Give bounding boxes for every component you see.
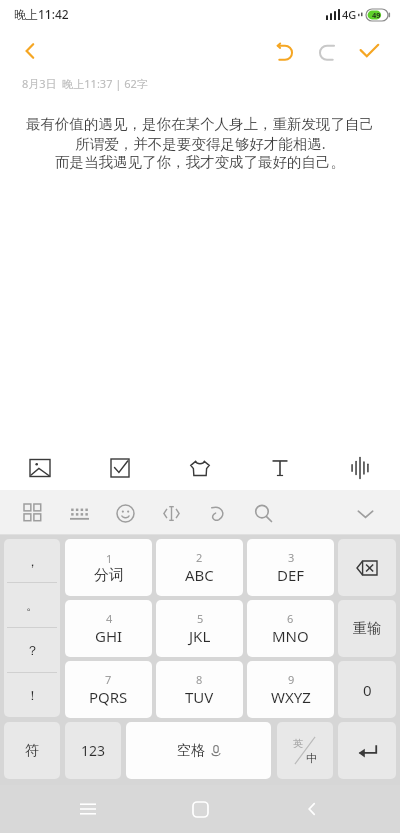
staticText: 6 — [287, 611, 294, 626]
button[interactable]: Enter — [338, 722, 396, 779]
staticText: PQRS — [89, 687, 128, 707]
button[interactable]: 2 — [156, 539, 243, 596]
staticText: MNO — [272, 626, 309, 646]
staticText: TUV — [185, 687, 214, 707]
button[interactable]: Text format — [240, 445, 320, 490]
staticText: DEF — [277, 565, 305, 585]
button[interactable]: Apps — [12, 492, 54, 534]
staticText: WXYZ — [271, 687, 311, 707]
staticText: 最有价值的遇见，是你在某个人身上，重新发现了自己 — [26, 115, 374, 133]
button[interactable]: ， — [4, 539, 60, 582]
button[interactable]: 符 — [4, 722, 60, 779]
staticText: 符 — [25, 742, 39, 760]
staticText: 空格 — [177, 742, 205, 760]
button[interactable]: 重输 — [338, 600, 396, 657]
staticText: JKL — [189, 626, 211, 646]
staticText: 8月3日 晚上11:37 | 62字 — [22, 76, 148, 91]
staticText: 4 — [106, 611, 113, 626]
button[interactable]: Clipboard — [150, 492, 192, 534]
button[interactable]: 8 — [156, 661, 243, 718]
button[interactable]: Recents — [64, 785, 112, 833]
button[interactable]: Style — [160, 445, 240, 490]
button[interactable]: Keyboard — [58, 492, 100, 534]
button[interactable]: 9 — [247, 661, 334, 718]
staticText: 重输 — [353, 620, 381, 638]
button[interactable]: 123 — [65, 722, 121, 779]
button[interactable]: 3 — [247, 539, 334, 596]
staticText: 5 — [197, 611, 204, 626]
button[interactable]: Back — [8, 29, 52, 73]
button[interactable]: Undo — [264, 30, 306, 72]
staticText: 所谓爱，并不是要变得足够好才能相遇. — [75, 133, 326, 153]
staticText: ABC — [185, 565, 214, 585]
staticText: 123 — [81, 741, 106, 760]
button[interactable]: Image — [0, 445, 80, 490]
staticText: 。 — [26, 597, 39, 613]
button[interactable]: 0 — [338, 661, 396, 718]
button[interactable]: 7 — [65, 661, 152, 718]
button[interactable]: 5 — [156, 600, 243, 657]
button[interactable]: Redo — [306, 30, 348, 72]
staticText: 49 — [372, 10, 381, 20]
staticText: 分词 — [94, 566, 124, 585]
button[interactable]: 。 — [4, 583, 60, 627]
staticText: 而是当我遇见了你，我才变成了最好的自己。 — [55, 153, 345, 171]
staticText: ？ — [26, 642, 39, 658]
button[interactable]: 1 — [65, 539, 152, 596]
button[interactable]: Switch language — [277, 722, 333, 779]
staticText: 中 — [306, 751, 317, 765]
button[interactable]: Delete — [338, 539, 396, 596]
staticText: 9 — [288, 672, 295, 687]
button[interactable]: Done — [348, 30, 390, 72]
button[interactable]: Search — [242, 492, 284, 534]
staticText: 1 — [106, 551, 113, 566]
button[interactable]: 空格 — [126, 722, 271, 779]
button[interactable]: 4 — [65, 600, 152, 657]
button[interactable]: ？ — [4, 628, 60, 672]
staticText: 英 — [293, 737, 303, 750]
staticText: 2 — [196, 550, 203, 565]
button[interactable]: 6 — [247, 600, 334, 657]
button[interactable]: Back — [288, 785, 336, 833]
staticText: 8 — [196, 672, 203, 687]
staticText: GHI — [95, 626, 123, 646]
staticText: ！ — [26, 687, 39, 703]
staticText: ， — [26, 553, 39, 569]
button[interactable]: Hide keyboard — [344, 492, 386, 534]
button[interactable]: Checklist — [80, 445, 160, 490]
button[interactable]: Emoji — [104, 492, 146, 534]
button[interactable]: Home — [176, 785, 224, 833]
staticText: 0 — [363, 680, 372, 700]
staticText: 4G — [342, 7, 357, 22]
staticText: 晚上11:42 — [14, 6, 69, 22]
staticText: 7 — [105, 672, 112, 687]
button[interactable]: Audio — [320, 445, 400, 490]
button[interactable]: ！ — [4, 673, 60, 717]
button[interactable]: Attach — [196, 492, 238, 534]
staticText: 3 — [288, 550, 295, 565]
